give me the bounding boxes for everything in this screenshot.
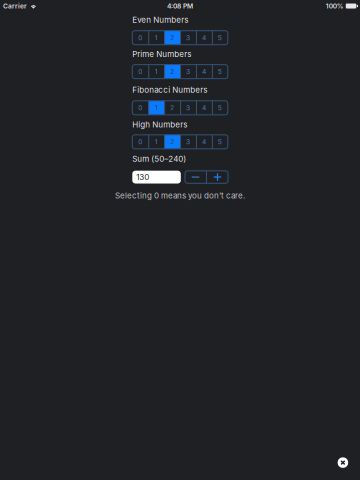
button[interactable]: 2: [164, 65, 180, 79]
button[interactable]: 0: [132, 31, 148, 45]
staticText: 5: [218, 34, 222, 42]
staticText: 3: [186, 68, 190, 76]
button[interactable]: Close: [333, 453, 353, 473]
button[interactable]: 1: [148, 101, 164, 115]
staticText: 4: [202, 138, 206, 146]
button[interactable]: 2: [164, 135, 180, 149]
staticText: 5: [218, 138, 222, 146]
button[interactable]: 1: [148, 31, 164, 45]
button[interactable]: 1: [148, 135, 164, 149]
button[interactable]: 0: [132, 135, 148, 149]
button[interactable]: 2: [164, 31, 180, 45]
button[interactable]: 5: [212, 65, 228, 79]
staticText: 0: [138, 104, 142, 112]
button[interactable]: 3: [180, 135, 196, 149]
button[interactable]: 4: [196, 31, 212, 45]
button[interactable]: 3: [180, 31, 196, 45]
staticText: 1: [155, 68, 158, 76]
staticText: 4:08 PM: [167, 2, 193, 10]
button[interactable]: 5: [212, 31, 228, 45]
staticText: 1: [155, 34, 158, 42]
button[interactable]: 3: [180, 101, 196, 115]
button[interactable]: 5: [212, 101, 228, 115]
staticText: 5: [218, 68, 222, 76]
staticText: 3: [186, 138, 190, 146]
staticText: Even Numbers: [132, 15, 188, 25]
button[interactable]: 0: [132, 65, 148, 79]
button[interactable]: Increase: [207, 171, 228, 183]
staticText: 0: [138, 34, 142, 42]
staticText: 130: [136, 172, 149, 182]
staticText: 2: [170, 138, 174, 146]
staticText: 4: [202, 68, 206, 76]
staticText: Selecting 0 means you don't care.: [115, 191, 245, 200]
staticText: 0: [138, 68, 142, 76]
button[interactable]: 2: [164, 101, 180, 115]
button[interactable]: 0: [132, 101, 148, 115]
staticText: 5: [218, 104, 222, 112]
staticText: Prime Numbers: [132, 49, 191, 59]
staticText: 0: [138, 138, 142, 146]
staticText: 2: [170, 68, 174, 76]
staticText: 2: [170, 104, 174, 112]
button[interactable]: 130: [132, 171, 181, 183]
staticText: Carrier: [3, 2, 27, 10]
staticText: High Numbers: [132, 120, 187, 129]
staticText: Sum (50–240): [132, 154, 186, 164]
staticText: 1: [155, 138, 158, 146]
button[interactable]: 3: [180, 65, 196, 79]
button[interactable]: 5: [212, 135, 228, 149]
staticText: 4: [202, 34, 206, 42]
staticText: 100%: [326, 2, 344, 10]
button[interactable]: 4: [196, 65, 212, 79]
button[interactable]: 4: [196, 135, 212, 149]
staticText: 3: [186, 34, 190, 42]
button[interactable]: 4: [196, 101, 212, 115]
staticText: 1: [155, 104, 158, 112]
staticText: 4: [202, 104, 206, 112]
button[interactable]: Decrease: [185, 171, 206, 183]
staticText: Fibonacci Numbers: [132, 85, 207, 95]
staticText: 2: [170, 34, 174, 42]
staticText: 3: [186, 104, 190, 112]
button[interactable]: 1: [148, 65, 164, 79]
